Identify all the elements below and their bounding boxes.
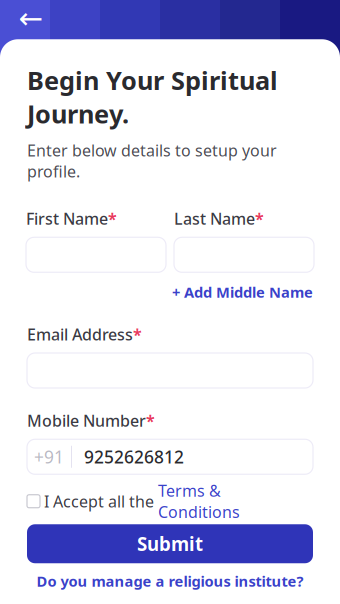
staticText: First Name: [26, 208, 108, 229]
staticText: 9252626812: [84, 445, 184, 468]
staticText: I Accept all the: [40, 491, 158, 512]
staticText: Do you manage a religious institute?: [36, 571, 303, 591]
staticText: *: [255, 208, 264, 229]
button[interactable]: Do you manage a religious institute?: [36, 571, 303, 591]
staticText: *: [133, 324, 142, 345]
staticText: Last Name: [174, 208, 255, 229]
staticText: *: [146, 410, 155, 431]
staticText: Terms & Conditions: [158, 480, 240, 522]
button[interactable]: Back: [14, 1, 48, 35]
button[interactable]: + Add Middle Name: [172, 282, 313, 302]
staticText: +91: [34, 445, 64, 468]
staticText: *: [108, 208, 117, 229]
staticText: Begin Your Spiritual Journey.: [27, 63, 278, 131]
staticText: Email Address: [27, 324, 133, 345]
button[interactable]: I Accept all the: [27, 488, 313, 514]
staticText: + Add Middle Name: [172, 282, 313, 302]
button[interactable]: Submit: [27, 524, 313, 563]
staticText: ←: [18, 2, 43, 35]
staticText: Enter below details to setup your profil…: [27, 139, 277, 182]
staticText: Submit: [137, 531, 203, 556]
staticText: Mobile Number: [27, 410, 146, 431]
